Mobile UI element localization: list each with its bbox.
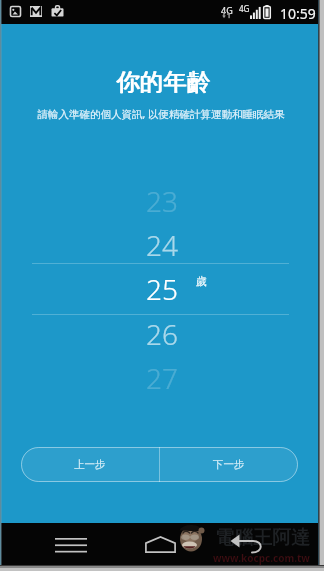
staticText: 請輸入準確的個人資訊, 以便精確計算運動和睡眠結果: [37, 107, 285, 121]
button[interactable]: 上一步: [21, 447, 159, 482]
button[interactable]: 下一步: [160, 447, 298, 482]
staticText: 24: [146, 226, 178, 264]
staticText: 下一步: [213, 458, 245, 471]
staticText: 4G: [221, 4, 233, 16]
staticText: 23: [146, 182, 178, 220]
staticText: 你的年齡: [116, 67, 210, 97]
staticText: 27: [146, 359, 178, 397]
button[interactable]: Home: [136, 520, 184, 568]
staticText: www.kocpc.com.tw: [213, 551, 310, 565]
staticText: 4G: [239, 3, 250, 14]
staticText: 歲: [196, 274, 207, 288]
button[interactable]: Back: [222, 521, 270, 569]
staticText: 26: [146, 315, 178, 353]
staticText: 10:59: [280, 4, 316, 23]
button[interactable]: Recent apps: [47, 521, 95, 569]
staticText: 上一步: [74, 458, 106, 471]
staticText: 25: [146, 270, 178, 308]
staticText: 你的年齡: [117, 67, 211, 97]
staticText: 電腦王阿達: [215, 526, 310, 550]
